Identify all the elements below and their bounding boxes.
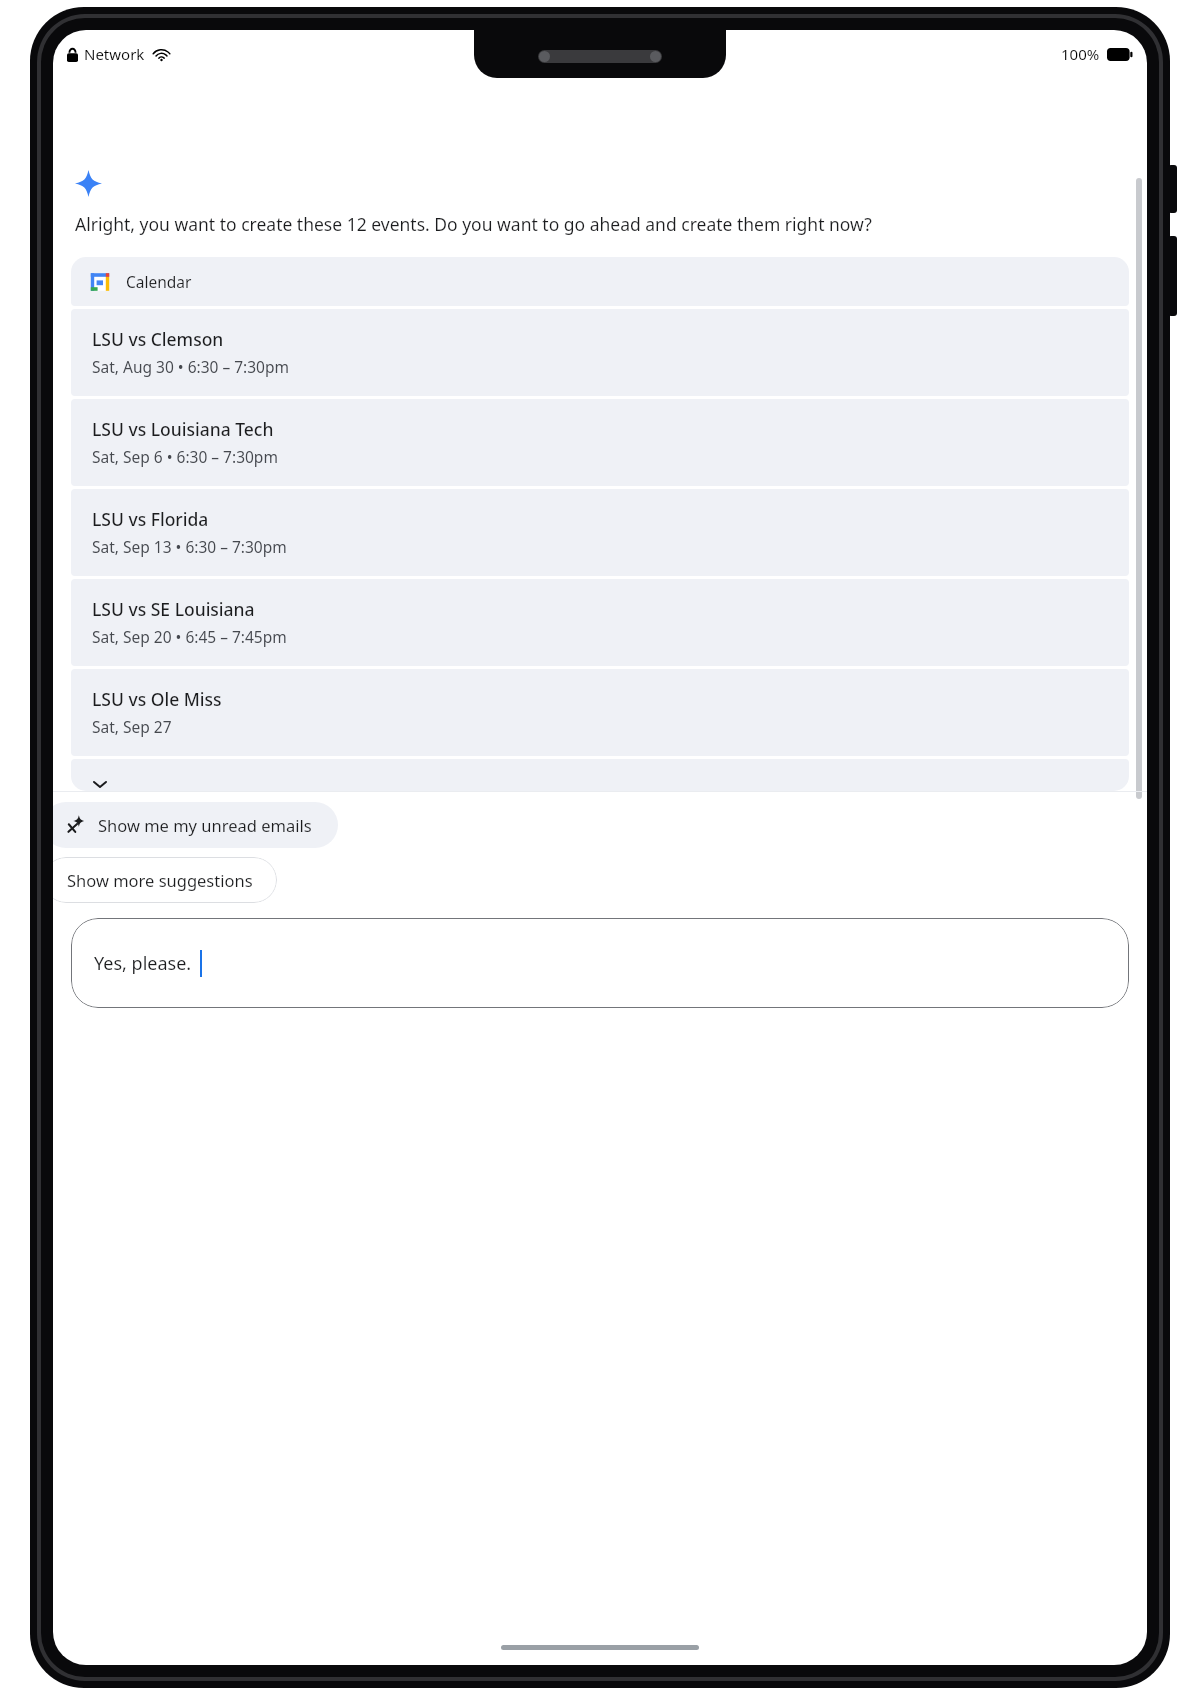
- staticText: Show me my unread emails: [98, 814, 312, 836]
- button[interactable]: LSU vs Ole Miss: [71, 669, 1129, 756]
- button[interactable]: LSU vs Clemson: [71, 309, 1129, 396]
- staticText: LSU vs Ole Miss: [92, 687, 222, 711]
- staticText: Calendar: [126, 271, 192, 292]
- button[interactable]: Calendar: [71, 257, 1129, 306]
- staticText: Sat, Sep 6 • 6:30 – 7:30pm: [92, 446, 278, 467]
- button[interactable]: Show more: [71, 759, 1129, 791]
- button[interactable]: Show more suggestions: [53, 857, 277, 903]
- staticText: Yes, please.: [94, 951, 192, 976]
- button[interactable]: Show me my unread emails: [53, 802, 338, 848]
- staticText: Show more suggestions: [67, 869, 253, 891]
- button[interactable]: Yes, please.: [71, 918, 1129, 1008]
- staticText: Sat, Sep 13 • 6:30 – 7:30pm: [92, 536, 287, 557]
- staticText: 100%: [1061, 44, 1100, 64]
- staticText: LSU vs Florida: [92, 507, 209, 531]
- button[interactable]: LSU vs Louisiana Tech: [71, 399, 1129, 486]
- staticText: LSU vs Clemson: [92, 327, 224, 351]
- staticText: Sat, Sep 20 • 6:45 – 7:45pm: [92, 626, 287, 647]
- staticText: Network: [84, 44, 145, 64]
- button[interactable]: LSU vs SE Louisiana: [71, 579, 1129, 666]
- staticText: Sat, Aug 30 • 6:30 – 7:30pm: [92, 356, 289, 377]
- button[interactable]: LSU vs Florida: [71, 489, 1129, 576]
- staticText: LSU vs SE Louisiana: [92, 597, 255, 621]
- staticText: Sat, Sep 27: [92, 716, 172, 737]
- staticText: LSU vs Louisiana Tech: [92, 417, 274, 441]
- staticText: Alright, you want to create these 12 eve…: [75, 212, 1129, 236]
